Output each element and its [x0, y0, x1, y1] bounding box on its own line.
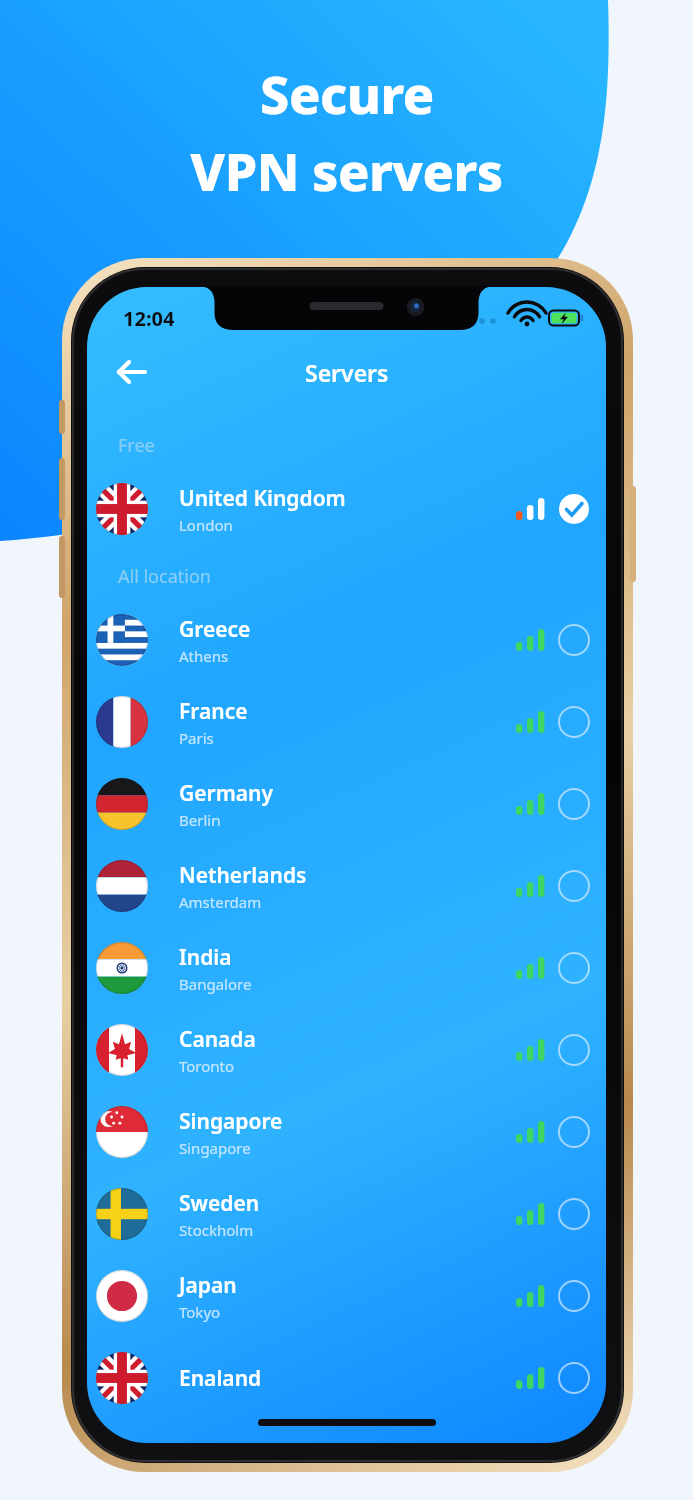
staticText: All location	[118, 564, 211, 589]
staticText: Canada	[179, 1025, 256, 1054]
staticText: Sweden	[179, 1189, 260, 1218]
staticText: Secure	[260, 58, 434, 129]
button[interactable]: Greece	[87, 599, 606, 681]
staticText: Toronto	[179, 1056, 235, 1076]
button[interactable]: Select server	[558, 1034, 590, 1066]
button[interactable]: Selected server	[558, 493, 590, 525]
button[interactable]: United Kingdom	[87, 468, 606, 550]
button[interactable]: Netherlands	[87, 845, 606, 927]
staticText: Athens	[179, 646, 229, 666]
button[interactable]: Enaland	[87, 1337, 606, 1419]
button[interactable]: Japan	[87, 1255, 606, 1337]
button[interactable]: Select server	[558, 1116, 590, 1148]
button[interactable]: Select server	[558, 788, 590, 820]
staticText: Tokyo	[179, 1302, 221, 1322]
staticText: Paris	[179, 728, 214, 748]
button[interactable]: Back	[103, 343, 161, 401]
staticText: Singapore	[179, 1107, 283, 1136]
staticText: Singapore	[179, 1138, 251, 1158]
staticText: 12:04	[123, 305, 175, 332]
button[interactable]: Germany	[87, 763, 606, 845]
button[interactable]: Select server	[558, 870, 590, 902]
staticText: VPN servers	[190, 135, 503, 206]
staticText: Servers	[305, 357, 389, 388]
staticText: France	[179, 697, 248, 726]
staticText: Japan	[179, 1271, 237, 1300]
staticText: Bangalore	[179, 974, 252, 994]
staticText: London	[179, 515, 233, 535]
staticText: Greece	[179, 615, 251, 644]
staticText: Stockholm	[179, 1220, 254, 1240]
button[interactable]: Select server	[558, 952, 590, 984]
button[interactable]: Select server	[558, 624, 590, 656]
staticText: United Kingdom	[179, 484, 346, 513]
staticText: Berlin	[179, 810, 221, 830]
button[interactable]: France	[87, 681, 606, 763]
button[interactable]: Select server	[558, 1362, 590, 1394]
button[interactable]: Select server	[558, 1280, 590, 1312]
button[interactable]: Canada	[87, 1009, 606, 1091]
staticText: Netherlands	[179, 861, 307, 890]
staticText: Enaland	[179, 1364, 262, 1393]
button[interactable]: India	[87, 927, 606, 1009]
button[interactable]: Sweden	[87, 1173, 606, 1255]
staticText: India	[179, 943, 232, 972]
button[interactable]: Select server	[558, 1198, 590, 1230]
staticText: Amsterdam	[179, 892, 262, 912]
staticText: Germany	[179, 779, 273, 808]
staticText: Free	[118, 433, 155, 458]
button[interactable]: Singapore	[87, 1091, 606, 1173]
button[interactable]: Select server	[558, 706, 590, 738]
